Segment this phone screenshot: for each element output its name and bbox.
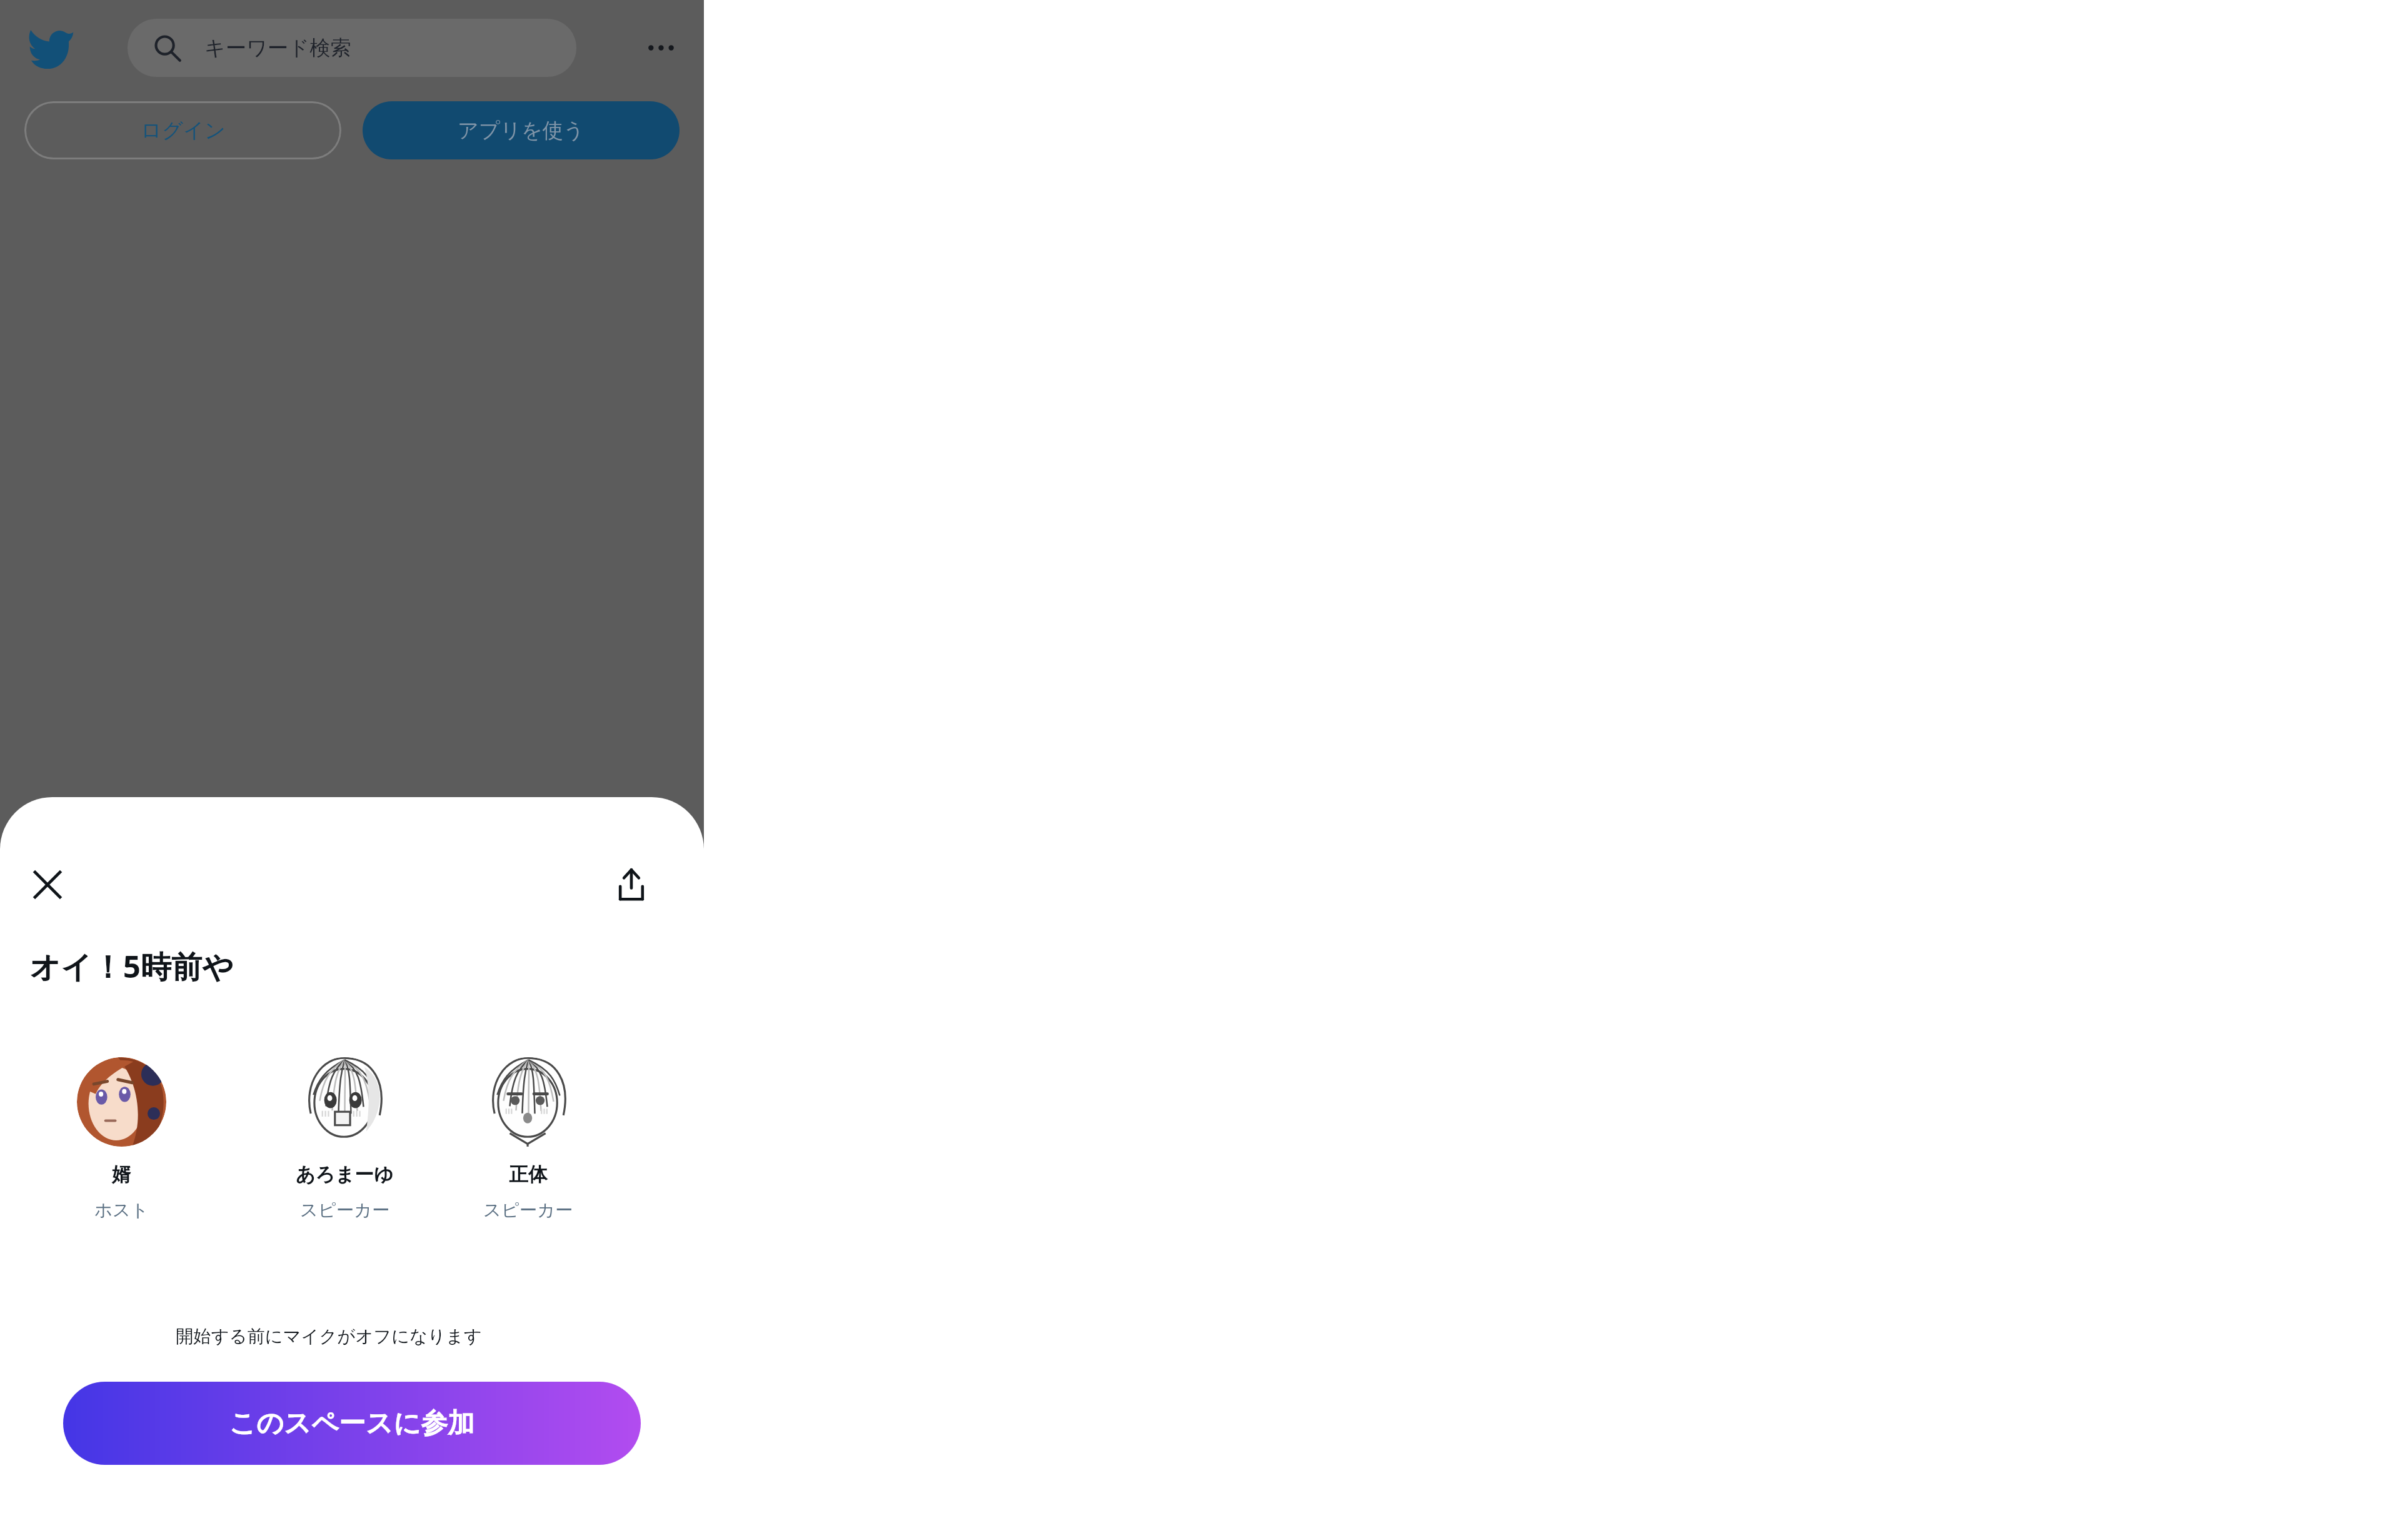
staticText: あろまーゆ [296, 1162, 394, 1187]
staticText: ホスト [94, 1199, 149, 1222]
button[interactable]: More [635, 21, 687, 74]
button[interactable]: このスペースに参加 [63, 1382, 641, 1465]
staticText: スピーカー [300, 1199, 390, 1222]
button[interactable]: あろまーゆ [296, 1057, 394, 1222]
staticText: アプリを使う [458, 118, 585, 144]
button[interactable]: アプリを使う [363, 101, 680, 159]
staticText: スピーカー [483, 1199, 573, 1222]
button[interactable]: キーワード検索 [128, 19, 576, 77]
button[interactable]: 婿 [77, 1057, 166, 1222]
staticText: 正体 [509, 1162, 548, 1187]
button[interactable]: Share [605, 858, 658, 911]
staticText: 婿 [112, 1162, 131, 1187]
staticText: ログイン [141, 118, 226, 144]
staticText: キーワード検索 [204, 35, 351, 61]
button[interactable]: 正体 [483, 1057, 573, 1222]
staticText: オイ！5時前や [29, 945, 234, 987]
staticText: このスペースに参加 [229, 1407, 475, 1440]
button[interactable]: Close [21, 858, 74, 911]
button[interactable]: Twitter [24, 21, 77, 74]
button[interactable]: ログイン [24, 101, 341, 159]
staticText: 開始する前にマイクがオフになります [0, 1325, 658, 1348]
